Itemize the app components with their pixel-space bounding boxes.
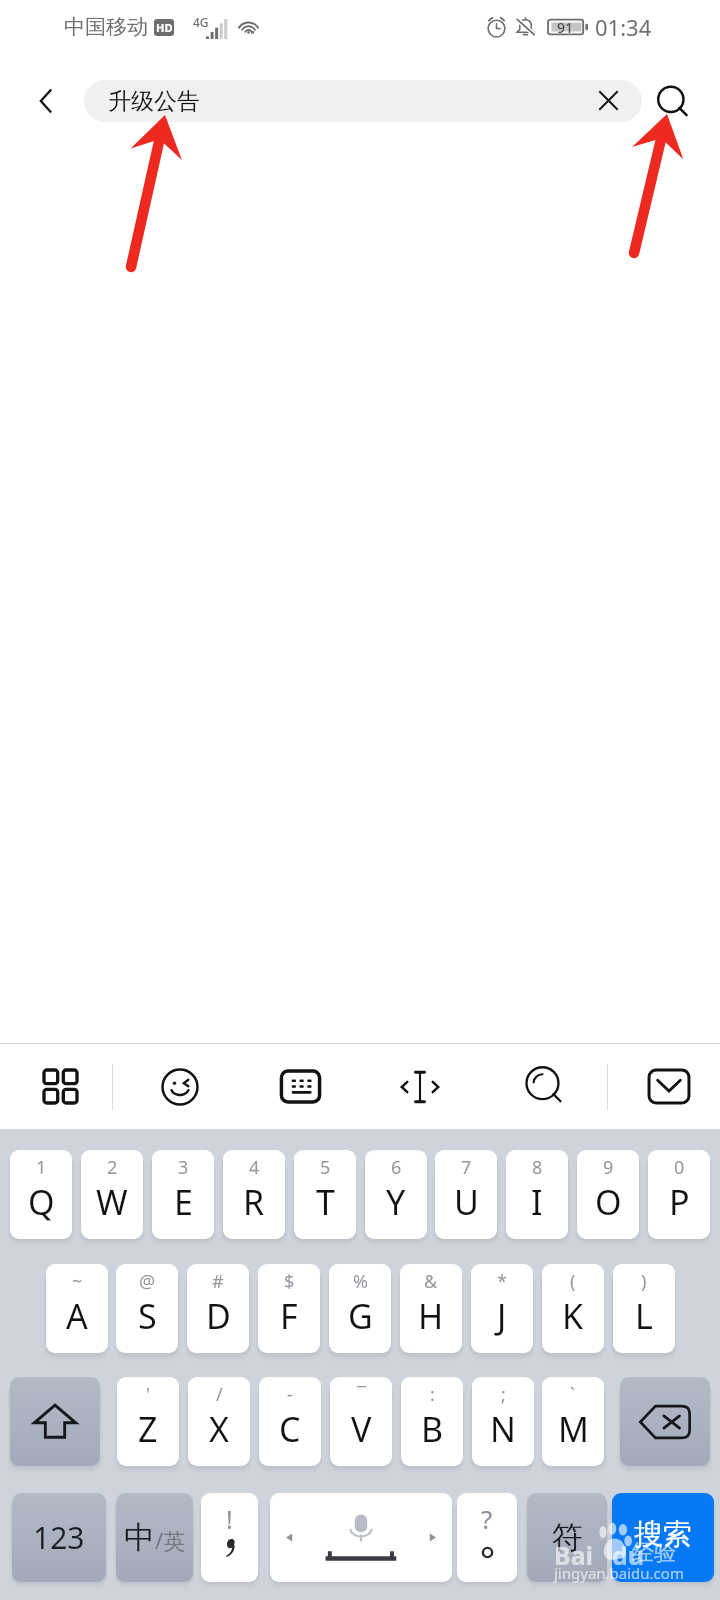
button[interactable]: 符 — [527, 1493, 607, 1582]
button[interactable]: : — [401, 1377, 463, 1466]
staticText: 升级公告 — [108, 87, 200, 116]
button[interactable]: 2 — [81, 1150, 143, 1239]
button[interactable]: ? — [457, 1493, 517, 1582]
button[interactable]: Emoji — [120, 1043, 240, 1130]
button[interactable]: Clear text — [589, 81, 627, 119]
staticText: ¯ — [357, 1382, 366, 1407]
button[interactable]: ¯ — [330, 1377, 392, 1466]
button[interactable]: Hide keyboard — [600, 1043, 720, 1130]
staticText: 4 — [249, 1155, 260, 1180]
staticText: * — [497, 1269, 507, 1294]
staticText: - — [287, 1382, 293, 1407]
staticText: HD — [156, 20, 173, 35]
button[interactable]: Backspace — [620, 1377, 710, 1466]
button[interactable]: & — [400, 1264, 462, 1353]
staticText: ! — [226, 1502, 233, 1536]
staticText: 9 — [603, 1155, 614, 1180]
staticText: 6 — [391, 1155, 402, 1180]
staticText: ) — [641, 1269, 647, 1294]
staticText: S — [138, 1293, 157, 1339]
staticText: 符 — [552, 1518, 583, 1557]
staticText: : — [430, 1382, 435, 1407]
button[interactable]: 123 — [12, 1493, 106, 1582]
staticText: 4G — [193, 14, 209, 30]
staticText: ` — [570, 1382, 576, 1407]
staticText: 123 — [33, 1517, 85, 1558]
button[interactable]: ) — [613, 1264, 675, 1353]
staticText: 经验 — [632, 1539, 676, 1567]
button[interactable]: 3 — [152, 1150, 214, 1239]
staticText: du — [612, 1538, 645, 1572]
button[interactable]: Keyboard layout — [240, 1043, 360, 1130]
staticText: U — [454, 1179, 479, 1225]
button[interactable]: Search — [480, 1043, 600, 1130]
staticText: J — [497, 1293, 507, 1339]
staticText: Y — [386, 1179, 406, 1225]
button[interactable]: Back — [24, 78, 70, 124]
staticText: B — [421, 1406, 444, 1452]
button[interactable]: 5 — [294, 1150, 356, 1239]
button[interactable]: ` — [542, 1377, 604, 1466]
button[interactable]: 6 — [365, 1150, 427, 1239]
staticText: jingyan.baidu.com — [554, 1563, 684, 1583]
button[interactable]: $ — [258, 1264, 320, 1353]
button[interactable]: 0 — [648, 1150, 710, 1239]
staticText: 0 — [674, 1155, 685, 1180]
button[interactable]: 9 — [577, 1150, 639, 1239]
staticText: O — [595, 1179, 622, 1225]
button[interactable]: Search — [649, 79, 697, 127]
staticText: ; — [501, 1382, 506, 1407]
staticText: 中 — [124, 1518, 155, 1557]
button[interactable]: 4 — [223, 1150, 285, 1239]
staticText: ~ — [72, 1269, 83, 1294]
staticText: 2 — [107, 1155, 118, 1180]
staticText: Z — [138, 1406, 158, 1452]
staticText: Bai — [554, 1538, 594, 1572]
button[interactable]: 7 — [435, 1150, 497, 1239]
staticText: 1 — [36, 1155, 47, 1180]
staticText: F — [280, 1293, 298, 1339]
button[interactable]: % — [329, 1264, 391, 1353]
staticText: C — [279, 1406, 301, 1452]
button[interactable]: ; — [472, 1377, 534, 1466]
button[interactable]: / — [188, 1377, 250, 1466]
staticText: N — [490, 1406, 516, 1452]
staticText: & — [424, 1269, 438, 1294]
button[interactable]: ! — [201, 1493, 258, 1582]
button[interactable]: Shift — [10, 1377, 100, 1466]
button[interactable]: 8 — [506, 1150, 568, 1239]
button[interactable]: 升级公告 — [84, 80, 642, 122]
button[interactable]: # — [187, 1264, 249, 1353]
button[interactable]: Move cursor — [360, 1043, 480, 1130]
button[interactable]: 中 — [116, 1493, 193, 1582]
staticText: A — [66, 1293, 88, 1339]
staticText: 91 — [557, 18, 574, 37]
staticText: W — [96, 1179, 128, 1225]
button[interactable]: 搜索 — [612, 1493, 714, 1582]
staticText: X — [209, 1406, 229, 1452]
button[interactable]: ~ — [46, 1264, 108, 1353]
button[interactable]: Symbols — [0, 1043, 120, 1130]
button[interactable]: - — [259, 1377, 321, 1466]
button[interactable]: 1 — [10, 1150, 72, 1239]
staticText: D — [206, 1293, 231, 1339]
button[interactable]: Space — [270, 1493, 452, 1582]
staticText: R — [243, 1179, 265, 1225]
staticText: @ — [139, 1269, 156, 1294]
staticText: ' — [146, 1382, 151, 1407]
staticText: V — [351, 1406, 372, 1452]
staticText: L — [635, 1293, 653, 1339]
staticText: Q — [28, 1179, 55, 1225]
button[interactable]: @ — [116, 1264, 178, 1353]
staticText: /英 — [155, 1525, 186, 1555]
staticText: G — [348, 1293, 373, 1339]
button[interactable]: ( — [542, 1264, 604, 1353]
staticText: P — [669, 1179, 690, 1225]
staticText: H — [418, 1293, 444, 1339]
button[interactable]: ' — [117, 1377, 179, 1466]
staticText: $ — [284, 1269, 295, 1294]
staticText: ? — [481, 1501, 493, 1536]
staticText: 7 — [461, 1155, 472, 1180]
staticText: ( — [570, 1269, 576, 1294]
button[interactable]: * — [471, 1264, 533, 1353]
